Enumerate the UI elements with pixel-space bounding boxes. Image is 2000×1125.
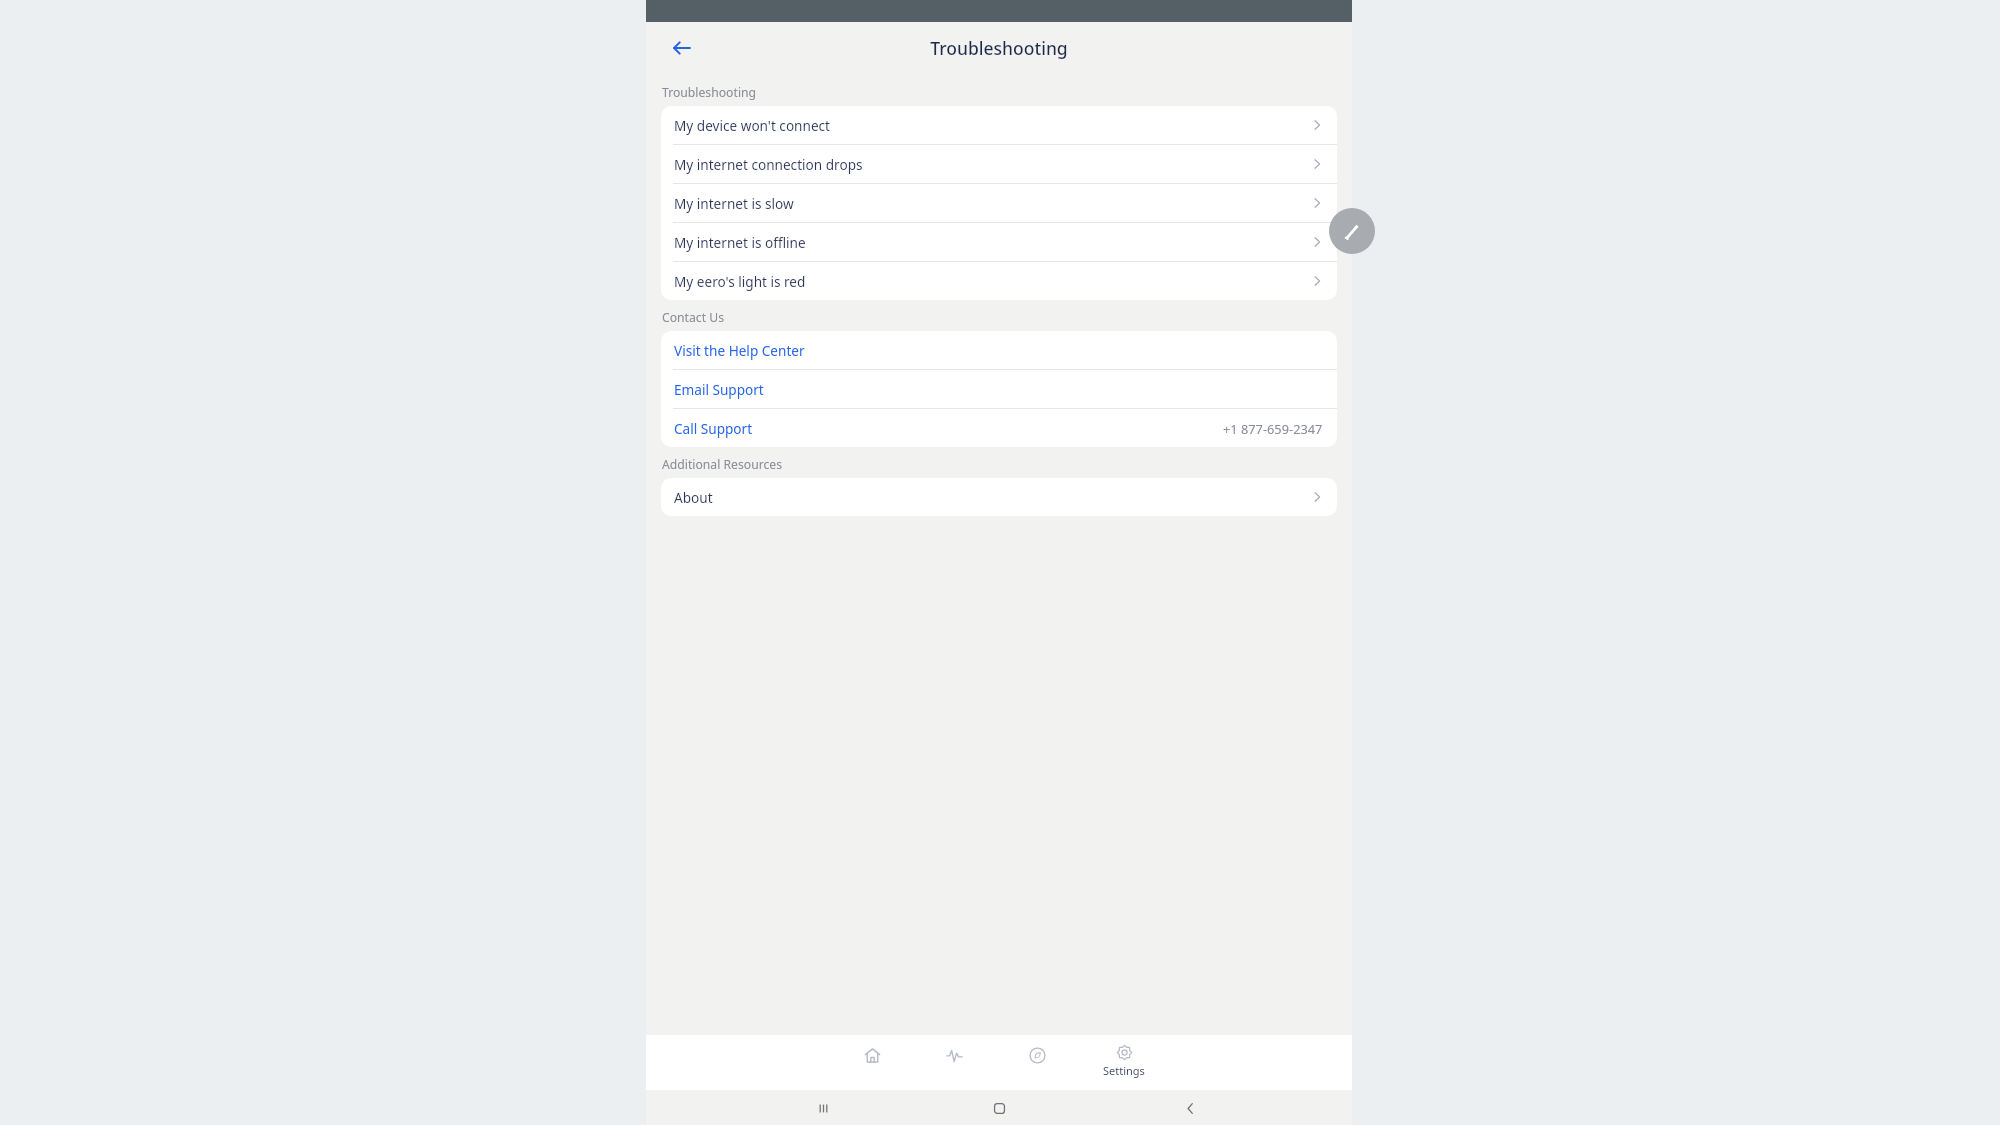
staticText: My internet is slow [674, 194, 1309, 213]
button[interactable]: Settings [1088, 1035, 1160, 1090]
staticText: Visit the Help Center [674, 341, 1323, 360]
button[interactable]: Call Support [661, 409, 1337, 447]
staticText: Email Support [674, 380, 1323, 399]
staticText: My eero's light is red [674, 272, 1309, 291]
staticText: My internet is offline [674, 233, 1309, 252]
button[interactable]: My eero's light is red [661, 262, 1337, 300]
button[interactable]: My internet connection drops [661, 145, 1337, 183]
button[interactable]: My device won't connect [661, 106, 1337, 144]
button[interactable]: About [661, 478, 1337, 516]
button[interactable]: Visit the Help Center [661, 331, 1337, 369]
button[interactable]: Recents [806, 1091, 840, 1125]
staticText: +1 877-659-2347 [1223, 420, 1323, 437]
button[interactable]: My internet is offline [661, 223, 1337, 261]
staticText: Contact Us [662, 309, 725, 326]
button[interactable]: Back [660, 26, 704, 70]
staticText: Troubleshooting [930, 36, 1068, 60]
button[interactable]: Edit [1329, 208, 1375, 254]
staticText: Additional Resources [662, 456, 783, 473]
staticText: Call Support [674, 419, 1223, 438]
button[interactable]: Activity [934, 1035, 975, 1090]
staticText: Troubleshooting [662, 84, 757, 101]
button[interactable]: Back [1173, 1091, 1207, 1125]
staticText: My internet connection drops [674, 155, 1309, 174]
button[interactable]: My internet is slow [661, 184, 1337, 222]
button[interactable]: Discover [1017, 1035, 1058, 1090]
button[interactable]: Home [852, 1035, 893, 1090]
staticText: Settings [1103, 1063, 1145, 1078]
button[interactable]: Home [982, 1091, 1016, 1125]
staticText: My device won't connect [674, 116, 1309, 135]
button[interactable]: Email Support [661, 370, 1337, 408]
staticText: About [674, 488, 1309, 507]
